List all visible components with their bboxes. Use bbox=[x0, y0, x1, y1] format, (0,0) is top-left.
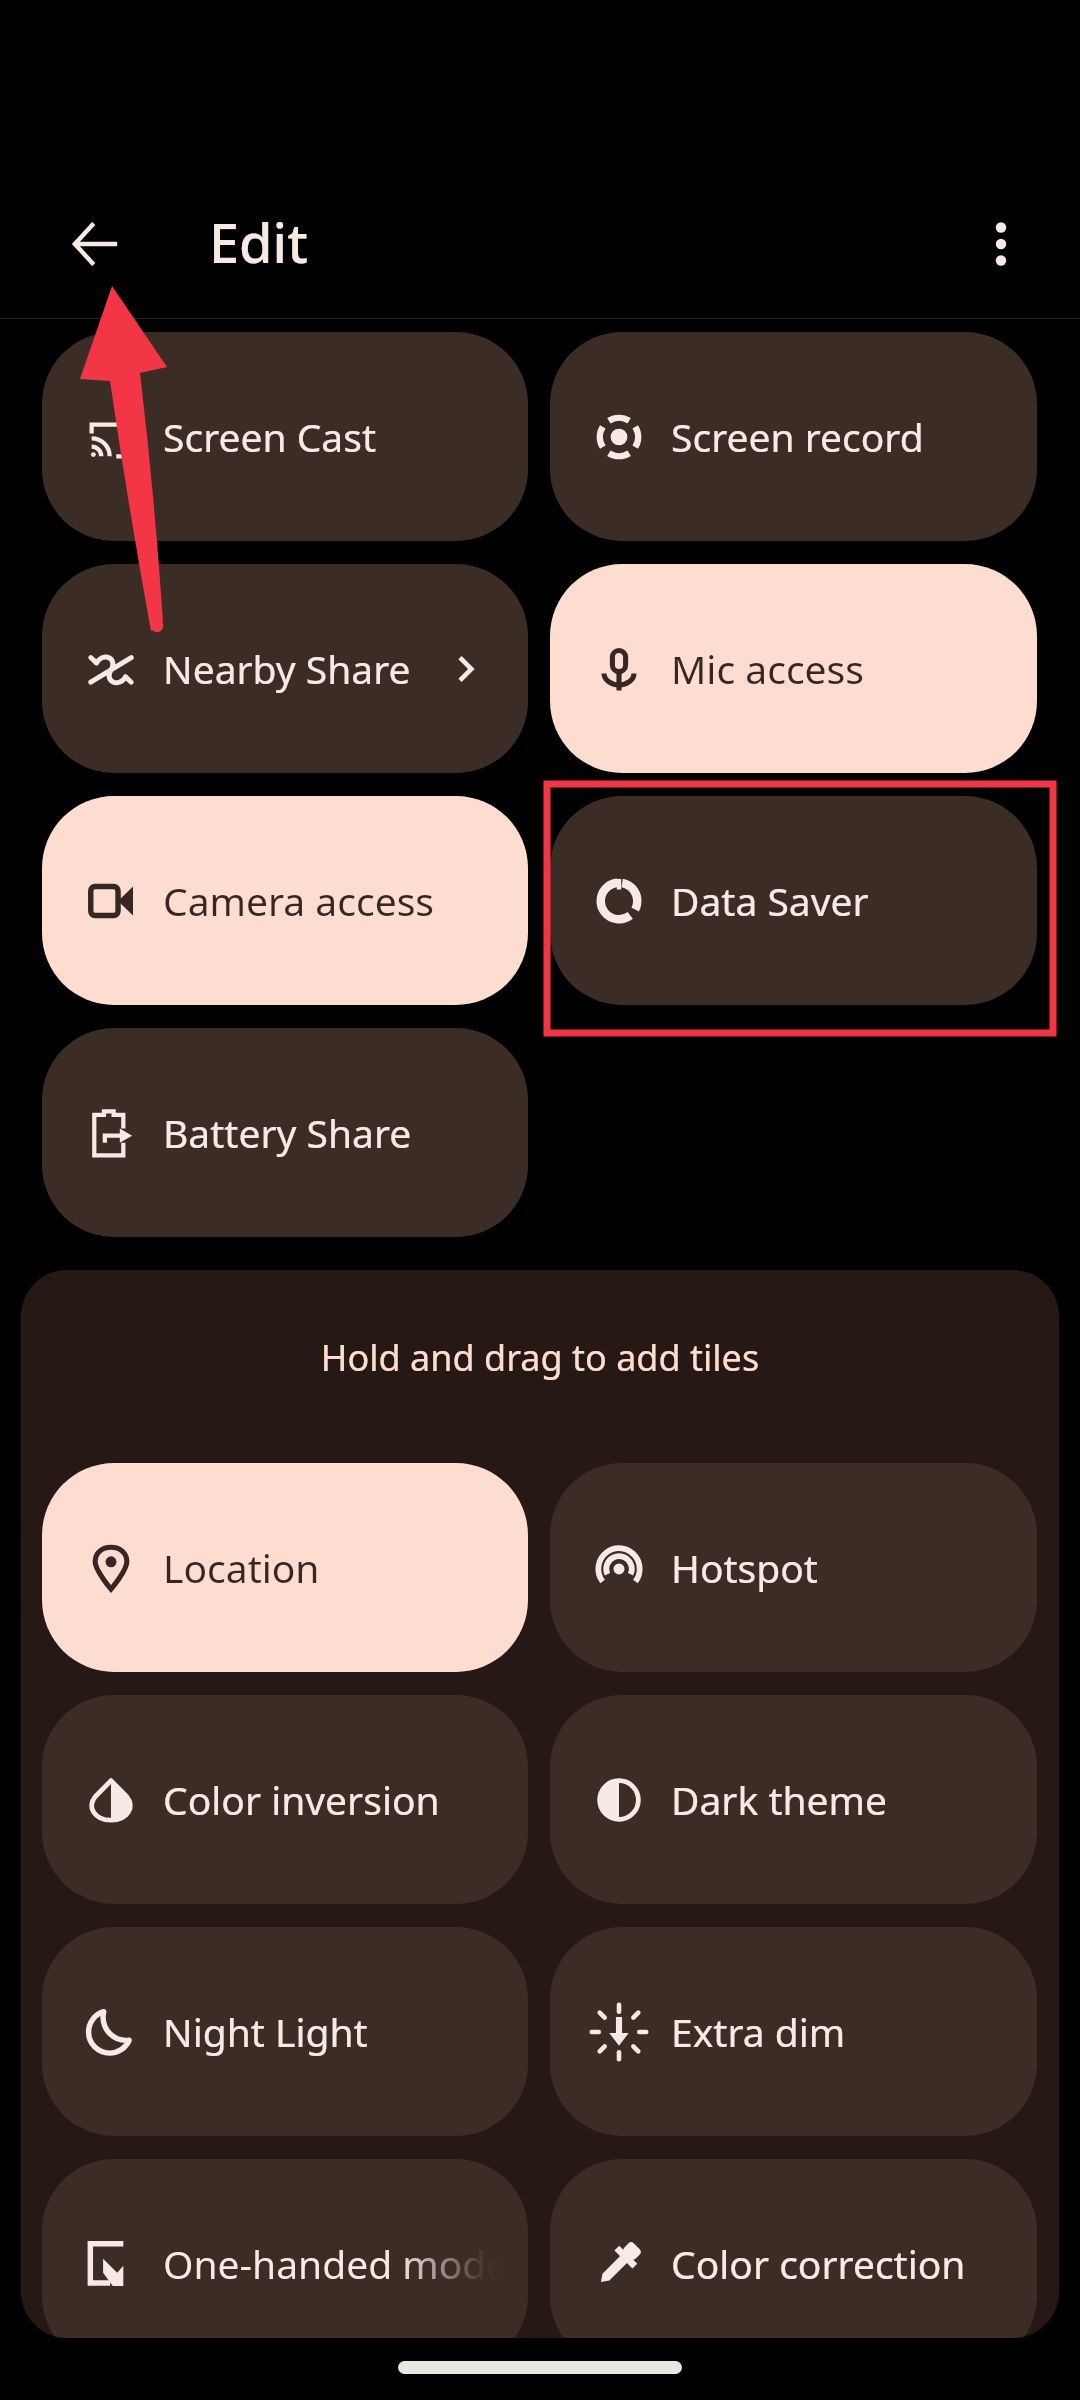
button[interactable]: Mic access bbox=[550, 564, 1037, 773]
staticText: Data Saver bbox=[671, 874, 869, 927]
button[interactable]: Dark theme bbox=[550, 1695, 1037, 1904]
staticText: Screen Cast bbox=[163, 410, 376, 463]
staticText: Color correction bbox=[671, 2237, 966, 2290]
button[interactable]: One-handed mode bbox=[42, 2159, 528, 2338]
staticText: Dark theme bbox=[671, 1773, 888, 1826]
staticText: One-handed mode bbox=[163, 2237, 506, 2290]
staticText: Edit bbox=[209, 205, 308, 279]
staticText: Battery Share bbox=[163, 1106, 412, 1159]
staticText: Extra dim bbox=[671, 2005, 846, 2058]
staticText: Screen record bbox=[671, 410, 924, 463]
button[interactable]: Screen record bbox=[550, 332, 1037, 541]
button[interactable]: More options bbox=[957, 200, 1045, 288]
button[interactable]: Location bbox=[42, 1463, 528, 1672]
button[interactable]: Screen Cast bbox=[42, 332, 528, 541]
button[interactable]: Back bbox=[52, 200, 140, 288]
staticText: Night Light bbox=[163, 2005, 368, 2058]
button[interactable]: Nearby Share bbox=[42, 564, 528, 773]
button[interactable]: Camera access bbox=[42, 796, 528, 1005]
staticText: Nearby Share bbox=[163, 642, 411, 695]
staticText: Mic access bbox=[671, 642, 864, 695]
button[interactable]: Color inversion bbox=[42, 1695, 528, 1904]
button[interactable]: Hotspot bbox=[550, 1463, 1037, 1672]
staticText: Hold and drag to add tiles bbox=[21, 1333, 1059, 1382]
staticText: Camera access bbox=[163, 874, 435, 927]
button[interactable]: Night Light bbox=[42, 1927, 528, 2136]
button[interactable]: Color correction bbox=[550, 2159, 1037, 2338]
staticText: Color inversion bbox=[163, 1773, 440, 1826]
button[interactable]: Data Saver bbox=[550, 796, 1037, 1005]
staticText: Location bbox=[163, 1541, 320, 1594]
button[interactable]: Extra dim bbox=[550, 1927, 1037, 2136]
staticText: Hotspot bbox=[671, 1541, 818, 1594]
button[interactable]: Battery Share bbox=[42, 1028, 528, 1237]
